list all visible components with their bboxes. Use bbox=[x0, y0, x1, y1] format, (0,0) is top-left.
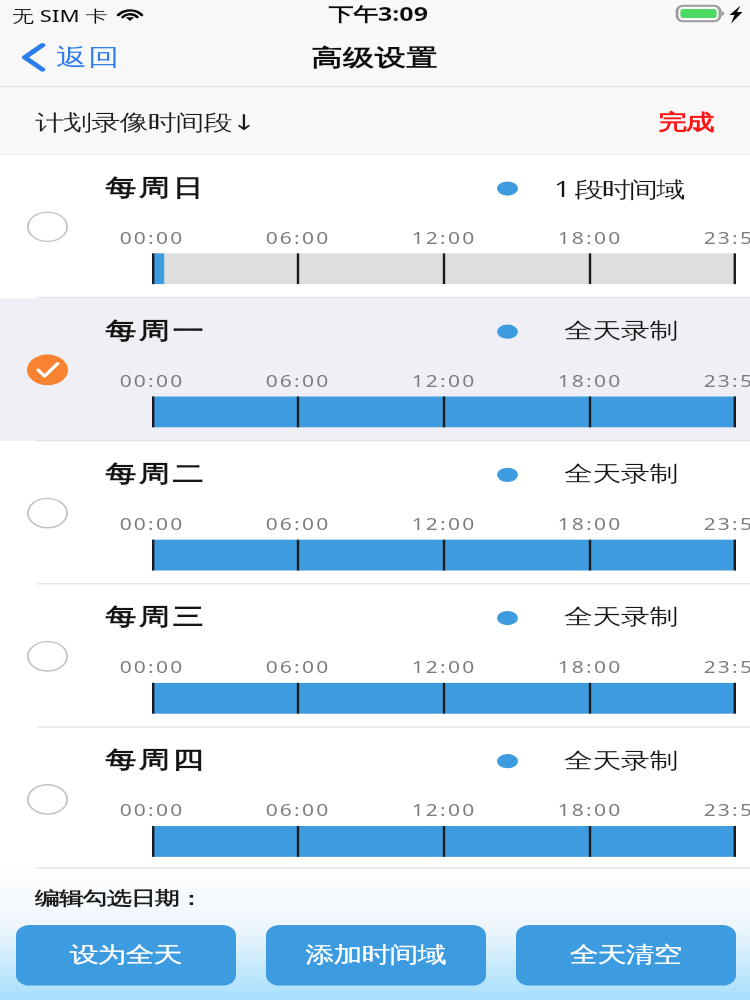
button[interactable]: 完成 bbox=[622, 91, 750, 156]
staticText: 设为全天 bbox=[70, 941, 182, 969]
staticText: 00:00 bbox=[107, 513, 197, 535]
staticText: 1 段时间域 bbox=[554, 174, 684, 204]
staticText: 06:00 bbox=[253, 227, 343, 249]
staticText: 每周日 bbox=[105, 173, 206, 202]
staticText: 18:00 bbox=[545, 227, 635, 249]
staticText: 添加时间域 bbox=[306, 941, 446, 969]
staticText: 完成 bbox=[659, 109, 713, 137]
staticText: 00:00 bbox=[107, 657, 197, 678]
staticText: 00:00 bbox=[107, 800, 197, 821]
staticText: 06:00 bbox=[253, 657, 343, 678]
staticText: 18:00 bbox=[545, 657, 635, 678]
button[interactable]: Select 每周日 bbox=[16, 200, 79, 253]
other: Back bbox=[22, 43, 45, 72]
button[interactable]: Select 每周日 bbox=[0, 155, 750, 298]
button[interactable]: Select 每周三 bbox=[0, 585, 750, 728]
staticText: 每周二 bbox=[105, 459, 206, 489]
staticText: 高级设置 bbox=[311, 43, 438, 73]
button[interactable]: Selected 每周一 bbox=[0, 298, 750, 441]
staticText: 18:00 bbox=[545, 800, 635, 821]
button[interactable]: Select 每周三 bbox=[16, 630, 79, 682]
staticText: 每周三 bbox=[105, 603, 206, 632]
staticText: 下午3:09 bbox=[328, 1, 428, 26]
staticText: 12:00 bbox=[399, 800, 489, 821]
button[interactable]: Select 每周二 bbox=[0, 441, 750, 585]
staticText: 无 SIM 卡 bbox=[12, 4, 108, 26]
staticText: 返回 bbox=[56, 43, 121, 72]
staticText: 23:59 bbox=[691, 800, 750, 821]
staticText: 23:59 bbox=[691, 227, 750, 249]
staticText: 23:59 bbox=[691, 370, 750, 392]
staticText: 12:00 bbox=[399, 657, 489, 678]
button[interactable]: Select 每周四 bbox=[16, 773, 79, 825]
staticText: 12:00 bbox=[399, 370, 489, 392]
staticText: 每周一 bbox=[105, 316, 206, 345]
button[interactable]: 全天清空 bbox=[516, 925, 736, 986]
button[interactable]: 添加时间域 bbox=[266, 925, 486, 986]
button[interactable]: Select 每周二 bbox=[16, 486, 79, 539]
other: Battery charging bbox=[676, 4, 742, 22]
staticText: 00:00 bbox=[107, 370, 197, 392]
staticText: 全天录制 bbox=[564, 317, 678, 345]
button[interactable]: Selected 每周一 bbox=[16, 343, 79, 396]
staticText: 06:00 bbox=[253, 800, 343, 821]
button[interactable]: Back bbox=[0, 39, 135, 76]
staticText: 12:00 bbox=[399, 513, 489, 535]
staticText: 全天录制 bbox=[564, 603, 678, 631]
staticText: 18:00 bbox=[545, 370, 635, 392]
staticText: 编辑勾选日期： bbox=[35, 887, 203, 910]
button[interactable]: Select 每周四 bbox=[0, 728, 750, 869]
staticText: 06:00 bbox=[253, 370, 343, 392]
staticText: 全天录制 bbox=[564, 460, 678, 488]
button[interactable]: 设为全天 bbox=[16, 925, 236, 986]
staticText: 全天清空 bbox=[570, 941, 682, 969]
staticText: 每周四 bbox=[105, 746, 206, 775]
staticText: 23:59 bbox=[691, 657, 750, 678]
staticText: 18:00 bbox=[545, 513, 635, 535]
staticText: 06:00 bbox=[253, 513, 343, 535]
staticText: 12:00 bbox=[399, 227, 489, 249]
staticText: 计划录像时间段↓ bbox=[35, 109, 256, 137]
staticText: 23:59 bbox=[691, 513, 750, 535]
staticText: 全天录制 bbox=[564, 747, 678, 774]
staticText: 00:00 bbox=[107, 227, 197, 249]
